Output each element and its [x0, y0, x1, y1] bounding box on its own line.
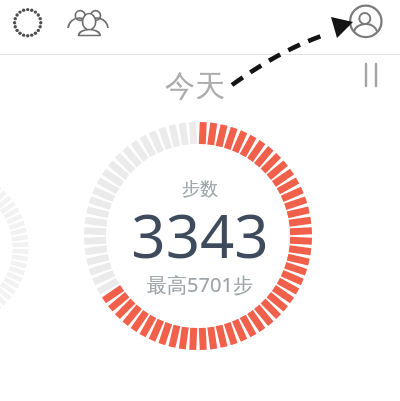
staticText: 步数 — [0, 178, 400, 201]
button[interactable] — [349, 4, 383, 38]
button[interactable] — [356, 58, 386, 92]
staticText: 最高5701步 — [0, 271, 400, 298]
staticText: 3343 — [0, 194, 400, 276]
button[interactable] — [66, 2, 110, 46]
staticText: 今天 — [0, 67, 395, 105]
button[interactable] — [9, 4, 47, 42]
